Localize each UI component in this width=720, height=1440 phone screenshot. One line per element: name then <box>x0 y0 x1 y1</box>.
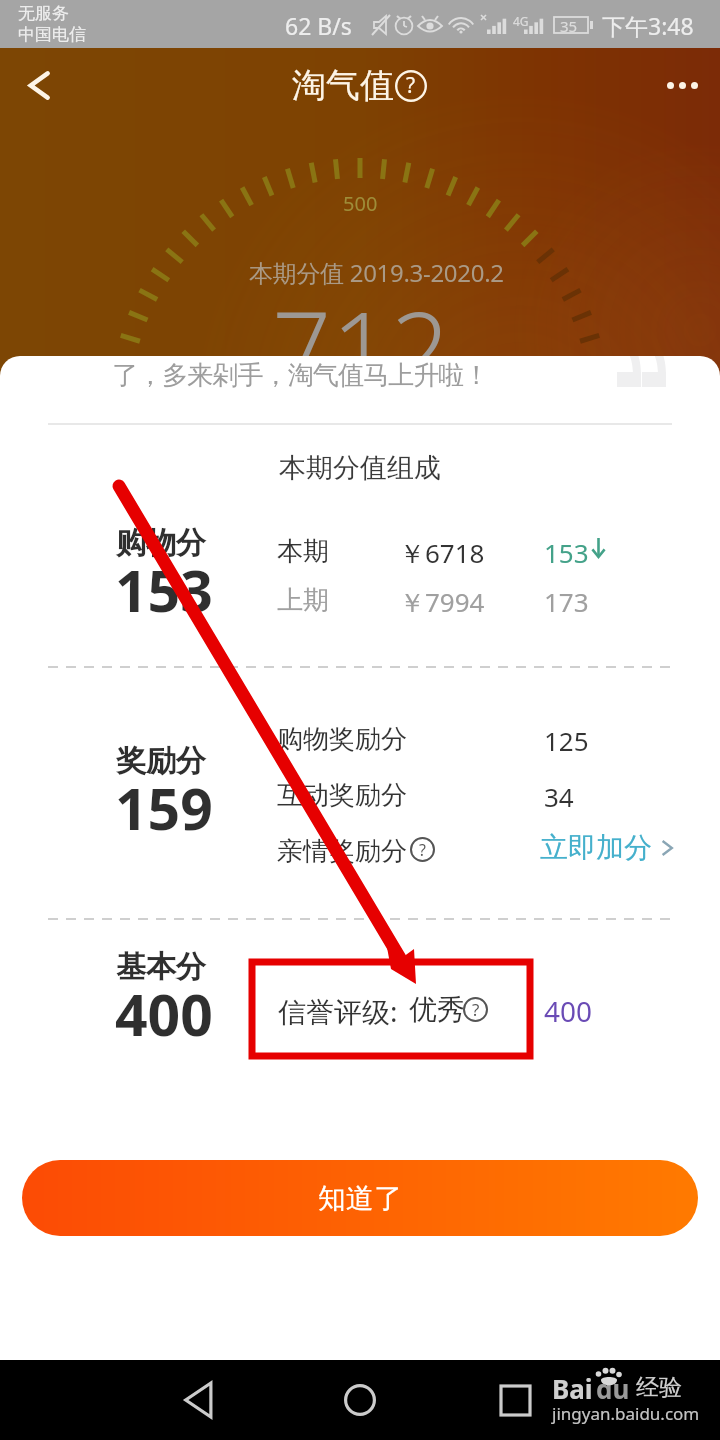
staticText: 上期 <box>277 584 329 617</box>
staticText: 无服务 <box>18 3 69 24</box>
staticText: 500 <box>343 190 378 217</box>
staticText: 159 <box>115 769 213 847</box>
staticText: 62 B/s <box>285 10 352 41</box>
staticText: 173 <box>544 584 589 619</box>
staticText: 基本分 <box>116 948 206 986</box>
staticText: 下午3:48 <box>602 10 694 41</box>
staticText: 知道了 <box>318 1181 402 1216</box>
button[interactable]: More options <box>644 48 720 122</box>
staticText: 34 <box>544 779 574 814</box>
staticText: 信誉评级: <box>278 992 398 1030</box>
staticText: 125 <box>544 723 589 758</box>
staticText: 400 <box>115 975 213 1053</box>
staticText: jingyan.baidu.com <box>552 1402 700 1425</box>
staticText: 淘气值 <box>292 64 394 107</box>
staticText: 本期 <box>277 535 329 568</box>
staticText: 本期分值组成 <box>279 451 441 485</box>
staticText: 35 <box>560 16 578 36</box>
button[interactable]: Home <box>320 1360 400 1440</box>
staticText: ? <box>472 998 480 1021</box>
button[interactable]: 淘气值 <box>292 64 428 107</box>
staticText: 中国电信 <box>18 24 86 45</box>
staticText: ? <box>406 71 416 100</box>
button[interactable]: Recents <box>475 1360 555 1440</box>
button[interactable]: Back <box>160 1360 240 1440</box>
button[interactable]: 知道了 <box>22 1160 698 1236</box>
staticText: 奖励分 <box>116 742 206 780</box>
staticText: 4G <box>513 13 529 29</box>
staticText: 本期分值 2019.3-2020.2 <box>249 256 504 289</box>
staticText: 153 <box>115 551 213 629</box>
button[interactable]: Back <box>0 48 72 122</box>
staticText: 经验 <box>636 1373 682 1402</box>
staticText: 购物奖励分 <box>277 723 407 756</box>
staticText: 了，多来剁手，淘气值马上升啦！ <box>112 359 489 392</box>
staticText: 400 <box>544 992 593 1030</box>
staticText: ? <box>419 839 426 861</box>
button[interactable]: 立即加分 <box>540 830 678 865</box>
staticText: Bai <box>552 1371 593 1406</box>
staticText: 优秀 <box>409 992 465 1027</box>
staticText: du <box>596 1371 630 1406</box>
staticText: 购物分 <box>116 524 206 562</box>
staticText: 亲情奖励分 <box>277 835 407 868</box>
staticText: 153 <box>544 535 589 570</box>
staticText: 互动奖励分 <box>277 779 407 812</box>
staticText: 立即加分 <box>540 830 652 865</box>
staticText: 712 <box>272 277 451 419</box>
staticText: ￥6718 <box>399 535 485 571</box>
staticText: ￥7994 <box>399 584 485 620</box>
